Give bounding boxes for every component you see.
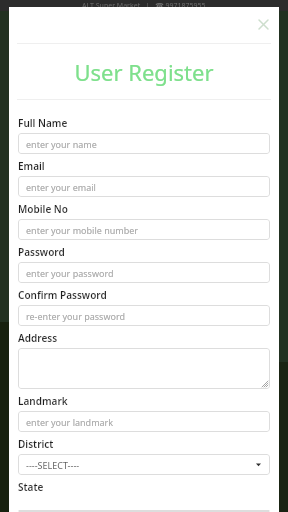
staticText: Mobile No	[18, 202, 68, 216]
staticText: enter your name	[26, 138, 97, 150]
staticText: State	[18, 480, 44, 494]
button[interactable]: enter your email	[18, 176, 270, 197]
staticText: Full Name	[18, 116, 68, 130]
button[interactable]: enter your password	[18, 262, 270, 283]
staticText: ALT Super Market | ☎ 9971875955	[82, 1, 206, 11]
staticText: Address	[18, 331, 58, 345]
staticText: Password	[18, 245, 65, 259]
button[interactable]: ----SELECT----	[18, 454, 270, 475]
button[interactable]: enter your landmark	[18, 411, 270, 432]
staticText: Confirm Password	[18, 288, 107, 302]
button[interactable]: re-enter your password	[18, 305, 270, 326]
staticText: User Register	[74, 57, 214, 87]
staticText: enter your mobile number	[26, 224, 138, 236]
staticText: enter your landmark	[26, 416, 114, 428]
button[interactable]: enter your mobile number	[18, 219, 270, 240]
staticText: re-enter your password	[26, 310, 125, 322]
button[interactable]: Close	[255, 16, 271, 32]
staticText: enter your email	[26, 181, 96, 193]
staticText: Email	[18, 159, 45, 173]
staticText: District	[18, 437, 54, 451]
staticText: enter your password	[26, 267, 114, 279]
button[interactable]: enter your name	[18, 133, 270, 154]
button[interactable]	[18, 348, 270, 389]
staticText: Landmark	[18, 394, 68, 408]
staticText: ----SELECT----	[26, 459, 80, 471]
